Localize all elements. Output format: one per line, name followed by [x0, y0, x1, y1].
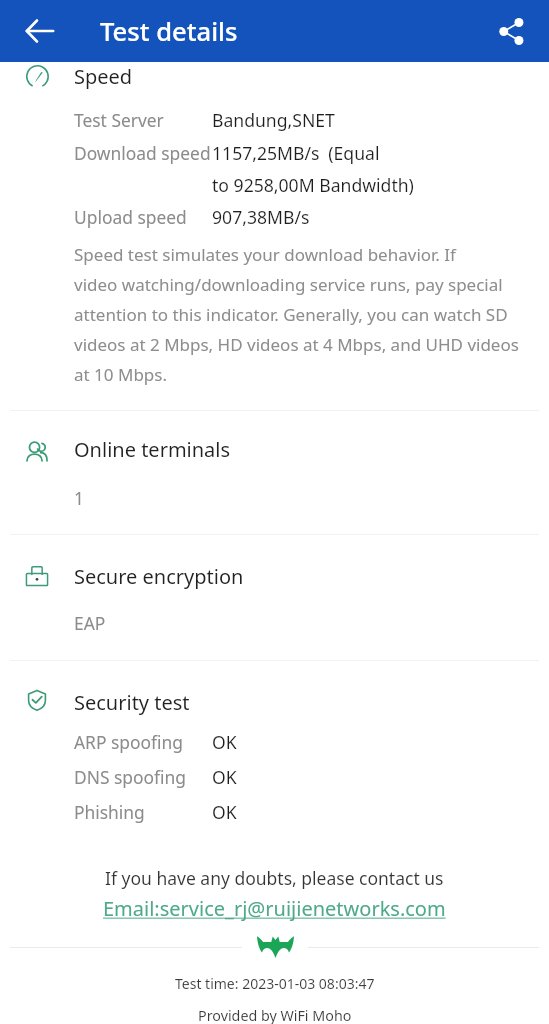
staticText: Test Server: [74, 108, 164, 132]
staticText: Upload speed: [74, 205, 187, 229]
staticText: Test details: [100, 14, 238, 49]
staticText: OK: [212, 730, 237, 754]
staticText: Bandung,SNET: [212, 108, 335, 132]
staticText: Phishing: [74, 800, 145, 824]
button[interactable]: Share: [480, 0, 542, 62]
staticText: EAP: [74, 611, 106, 635]
staticText: OK: [212, 800, 237, 824]
staticText: Speed test simulates your download behav…: [74, 243, 519, 386]
staticText: DNS spoofing: [74, 765, 186, 789]
staticText: Security test: [74, 689, 190, 716]
staticText: 1: [74, 486, 84, 510]
staticText: OK: [212, 765, 237, 789]
staticText: Online terminals: [74, 436, 231, 463]
staticText: If you have any doubts, please contact u…: [105, 866, 444, 890]
staticText: Speed: [74, 63, 133, 90]
button[interactable]: Email:service_rj@ruijienetworks.com: [101, 895, 448, 922]
staticText: 907,38MB/s: [212, 205, 310, 229]
staticText: Test time: 2023-01-03 08:03:47: [175, 974, 375, 993]
staticText: 1157,25MB/s (Equal to 9258,00M Bandwidth…: [212, 141, 414, 197]
staticText: Secure encryption: [74, 563, 244, 590]
button[interactable]: Back: [9, 0, 71, 62]
staticText: Download speed: [74, 141, 211, 165]
staticText: Email:service_rj@ruijienetworks.com: [103, 895, 446, 922]
staticText: Provided by WiFi Moho: [198, 1006, 352, 1024]
staticText: ARP spoofing: [74, 730, 183, 754]
